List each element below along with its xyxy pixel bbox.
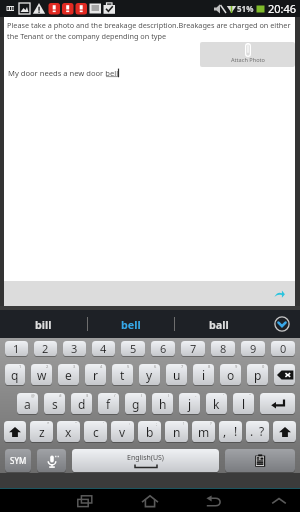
- other: shift: [5, 424, 25, 440]
- staticText: .: [250, 423, 254, 439]
- button[interactable]: 7: [181, 341, 205, 356]
- staticText: @: [31, 393, 35, 398]
- button[interactable]: 6: [151, 341, 175, 356]
- staticText: ball: [209, 317, 229, 332]
- button[interactable]: u: [166, 364, 187, 385]
- staticText: 5: [130, 341, 137, 356]
- button[interactable]: 5: [121, 341, 145, 356]
- button[interactable]: y: [139, 364, 160, 385]
- button[interactable]: 8: [211, 341, 235, 356]
- staticText: 0: [280, 341, 287, 356]
- staticText: 0: [262, 364, 265, 369]
- button[interactable]: shift: [273, 421, 296, 442]
- staticText: !: [183, 421, 185, 426]
- button[interactable]: j: [179, 393, 200, 414]
- button[interactable]: Back: [194, 489, 234, 512]
- other: shift: [275, 424, 295, 440]
- staticText: 1: [13, 341, 20, 356]
- button[interactable]: 3: [63, 341, 86, 356]
- button[interactable]: p: [247, 364, 268, 385]
- button[interactable]: f: [98, 393, 119, 414]
- button[interactable]: Hide keyboard: [259, 489, 299, 512]
- button[interactable]: ball: [175, 310, 262, 338]
- staticText: p: [254, 367, 262, 383]
- staticText: ;: [156, 421, 158, 426]
- staticText: (: [141, 393, 143, 398]
- staticText: y: [146, 367, 153, 383]
- button[interactable]: o: [220, 364, 241, 385]
- button[interactable]: c: [84, 421, 107, 442]
- button[interactable]: backspace: [274, 364, 295, 385]
- staticText: #: [59, 393, 62, 398]
- button[interactable]: ,: [219, 421, 242, 442]
- button[interactable]: x: [57, 421, 80, 442]
- button[interactable]: i: [193, 364, 214, 385]
- staticText: 51%: [237, 3, 254, 14]
- staticText: 6: [160, 341, 167, 356]
- button[interactable]: t: [112, 364, 133, 385]
- button[interactable]: mic: [37, 449, 66, 472]
- staticText: 9: [250, 341, 257, 356]
- button[interactable]: More suggestions: [274, 316, 290, 332]
- staticText: ': [223, 393, 224, 398]
- staticText: the Tenant or the company depending on t…: [7, 31, 167, 41]
- button[interactable]: Recents: [65, 489, 105, 512]
- button[interactable]: Send: [274, 290, 285, 298]
- button[interactable]: enter: [260, 393, 295, 414]
- button[interactable]: 4: [92, 341, 115, 356]
- button[interactable]: 9: [241, 341, 265, 356]
- button[interactable]: z: [30, 421, 53, 442]
- staticText: i: [202, 367, 206, 383]
- button[interactable]: v: [111, 421, 134, 442]
- other: mic: [42, 453, 62, 469]
- button[interactable]: 0: [271, 341, 295, 356]
- staticText: c: [93, 424, 99, 440]
- button[interactable]: .: [246, 421, 269, 442]
- staticText: Attach Photo: [231, 56, 265, 64]
- staticText: bill: [35, 317, 52, 332]
- button[interactable]: English(US): [72, 449, 219, 472]
- staticText: 6: [154, 364, 157, 369]
- button[interactable]: k: [206, 393, 227, 414]
- staticText: /: [114, 393, 116, 398]
- button[interactable]: g: [125, 393, 146, 414]
- staticText: ?: [210, 421, 212, 426]
- staticText: b: [146, 424, 154, 440]
- staticText: g: [132, 396, 140, 412]
- button[interactable]: 1: [5, 341, 28, 356]
- button[interactable]: Attach Photo: [200, 42, 295, 67]
- staticText: 7: [190, 341, 197, 356]
- staticText: ?: [259, 423, 265, 439]
- staticText: 1: [19, 364, 22, 369]
- button[interactable]: 2: [34, 341, 57, 356]
- staticText: 4: [100, 341, 107, 356]
- button[interactable]: r: [85, 364, 106, 385]
- staticText: 20:46: [268, 1, 297, 16]
- button[interactable]: l: [233, 393, 254, 414]
- staticText: u: [173, 367, 181, 383]
- button[interactable]: m: [192, 421, 215, 442]
- staticText: Please take a photo and the breakage des…: [7, 20, 291, 30]
- staticText: 9: [235, 364, 238, 369]
- button[interactable]: w: [31, 364, 52, 385]
- button[interactable]: e: [58, 364, 79, 385]
- staticText: 4: [100, 364, 103, 369]
- staticText: n: [173, 424, 181, 440]
- button[interactable]: b: [138, 421, 161, 442]
- button[interactable]: q: [5, 364, 25, 385]
- staticText: d: [78, 396, 86, 412]
- button[interactable]: h: [152, 393, 173, 414]
- button[interactable]: d: [71, 393, 92, 414]
- staticText: h: [159, 396, 167, 412]
- button[interactable]: bell: [88, 310, 174, 338]
- button[interactable]: shift: [4, 421, 26, 442]
- button[interactable]: SYM: [5, 449, 31, 472]
- button[interactable]: clip: [225, 449, 295, 472]
- button[interactable]: a: [17, 393, 38, 414]
- staticText: ): [168, 393, 170, 398]
- button[interactable]: n: [165, 421, 188, 442]
- button[interactable]: s: [44, 393, 65, 414]
- staticText: ': [103, 421, 104, 426]
- button[interactable]: Home: [130, 489, 170, 512]
- button[interactable]: bill: [0, 310, 87, 338]
